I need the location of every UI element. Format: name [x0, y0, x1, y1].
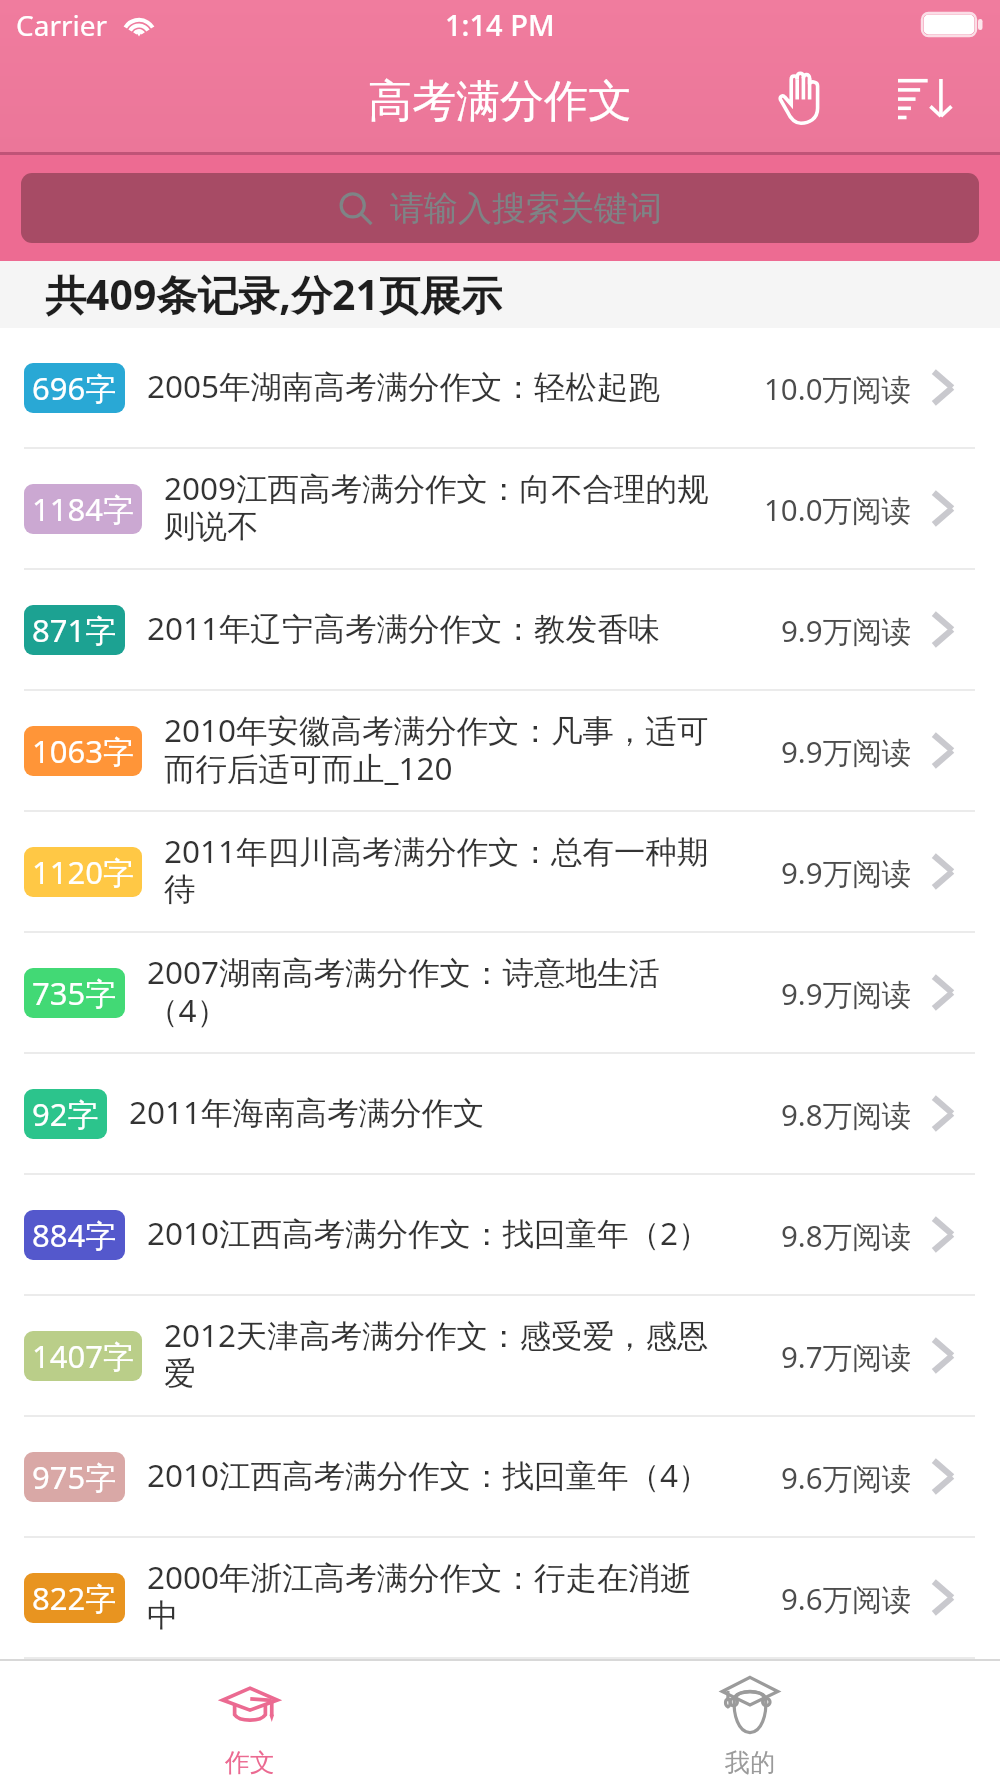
staticText: 9.7万阅读 — [781, 1336, 912, 1376]
button[interactable]: 1063字 — [0, 691, 1000, 810]
staticText: 共409条记录,分21页展示 — [45, 266, 502, 322]
staticText: 9.9万阅读 — [781, 973, 912, 1013]
button[interactable]: 975字 — [0, 1417, 1000, 1536]
staticText: 2012天津高考满分作文：感受爱，感恩爱 — [164, 1318, 711, 1393]
staticText: 2010江西高考满分作文：找回童年（2） — [147, 1216, 710, 1254]
staticText: 1184字 — [32, 488, 134, 530]
staticText: 10.0万阅读 — [764, 368, 912, 408]
staticText: Carrier — [16, 6, 108, 44]
button[interactable]: 作文 — [0, 1661, 500, 1778]
staticText: 696字 — [32, 367, 117, 409]
staticText: 1:14 PM — [445, 5, 555, 44]
staticText: 871字 — [32, 609, 117, 651]
button[interactable]: 871字 — [0, 570, 1000, 689]
staticText: 735字 — [32, 972, 117, 1014]
button[interactable]: 696字 — [0, 328, 1000, 447]
staticText: 2011年海南高考满分作文 — [129, 1095, 485, 1133]
staticText: 2009江西高考满分作文：向不合理的规则说不 — [164, 471, 711, 546]
button[interactable]: 1120字 — [0, 812, 1000, 931]
staticText: 9.9万阅读 — [781, 731, 912, 771]
button[interactable]: Hand gesture — [757, 56, 841, 141]
staticText: 9.8万阅读 — [781, 1215, 912, 1255]
button[interactable]: Sort — [898, 63, 982, 133]
staticText: 1120字 — [32, 851, 134, 893]
button[interactable]: 92字 — [0, 1054, 1000, 1173]
button[interactable]: 884字 — [0, 1175, 1000, 1294]
staticText: 2011年四川高考满分作文：总有一种期待 — [164, 834, 711, 909]
button[interactable]: 请输入搜索关键词 — [21, 173, 979, 243]
staticText: 2005年湖南高考满分作文：轻松起跑 — [147, 369, 661, 407]
staticText: 2007湖南高考满分作文：诗意地生活（4） — [147, 955, 711, 1031]
staticText: 我的 — [725, 1747, 775, 1778]
staticText: 1407字 — [32, 1335, 134, 1377]
staticText: 2011年辽宁高考满分作文：教发香味 — [147, 611, 661, 649]
button[interactable]: 我的 — [500, 1661, 1000, 1778]
button[interactable]: 735字 — [0, 933, 1000, 1052]
staticText: 1063字 — [32, 730, 134, 772]
staticText: 2010年安徽高考满分作文：凡事，适可而行后适可而止_120 — [164, 713, 711, 789]
staticText: 作文 — [225, 1747, 275, 1778]
staticText: 975字 — [32, 1456, 117, 1498]
button[interactable]: 1407字 — [0, 1296, 1000, 1415]
staticText: 10.0万阅读 — [764, 489, 912, 529]
staticText: 2000年浙江高考满分作文：行走在消逝中 — [147, 1560, 711, 1635]
button[interactable]: 1184字 — [0, 449, 1000, 568]
staticText: 请输入搜索关键词 — [390, 187, 662, 230]
staticText: 9.6万阅读 — [781, 1457, 912, 1497]
staticText: 9.9万阅读 — [781, 610, 912, 650]
staticText: 92字 — [32, 1093, 99, 1135]
staticText: 2010江西高考满分作文：找回童年（4） — [147, 1458, 710, 1496]
staticText: 884字 — [32, 1214, 117, 1256]
staticText: 9.9万阅读 — [781, 852, 912, 892]
staticText: 高考满分作文 — [368, 74, 632, 129]
staticText: 9.6万阅读 — [781, 1578, 912, 1618]
staticText: 822字 — [32, 1577, 117, 1619]
button[interactable]: 822字 — [0, 1538, 1000, 1657]
staticText: 9.8万阅读 — [781, 1094, 912, 1134]
